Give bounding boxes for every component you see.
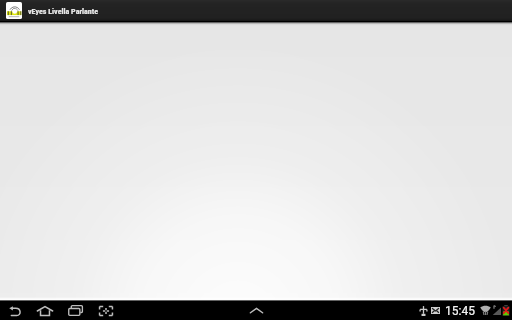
other: USB debugging	[419, 305, 428, 316]
button[interactable]: Show notifications	[245, 301, 267, 320]
button[interactable]: vEyes Livella Parlante	[0, 0, 512, 21]
other: Battery	[502, 305, 510, 316]
staticText: 15:45	[445, 304, 475, 318]
other: Wi-Fi	[480, 305, 491, 315]
button[interactable]: Recent apps	[64, 301, 87, 320]
other: New mail	[431, 307, 440, 314]
staticText: vEyes Livella Parlante	[28, 7, 99, 16]
button[interactable]: Home	[33, 301, 57, 320]
button[interactable]: Screenshot	[95, 301, 117, 320]
button[interactable]: Back	[5, 301, 26, 320]
other: Mobile signal	[492, 305, 501, 315]
